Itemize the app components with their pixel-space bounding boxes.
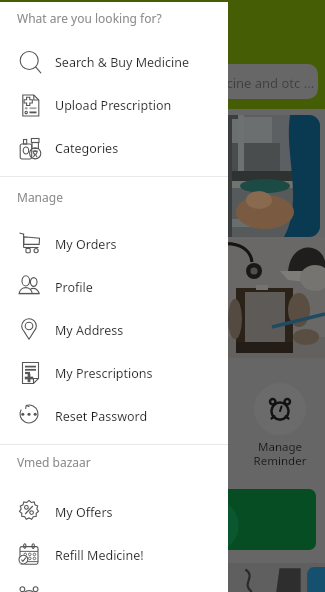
- staticText: Order on WhatsApp: [26, 511, 150, 529]
- button[interactable]: [0, 581, 228, 592]
- staticText: Manage: [17, 189, 63, 205]
- button[interactable]: My Offers: [0, 495, 228, 529]
- staticText: My Offers: [55, 504, 113, 521]
- staticText: Manage Reminder: [240, 439, 320, 468]
- button[interactable]: Upload Prescription: [0, 88, 228, 122]
- staticText: Search for medicine and otc ...: [130, 74, 315, 92]
- staticText: Upload Prescription: [55, 97, 172, 114]
- button[interactable]: Reset Password: [0, 399, 228, 433]
- button[interactable]: Search & Buy Medicine: [0, 45, 228, 79]
- button[interactable]: Refill Medicine!: [0, 538, 228, 572]
- button[interactable]: My Address: [0, 313, 228, 347]
- staticText: Categories: [55, 140, 119, 157]
- button[interactable]: Profile: [0, 270, 228, 304]
- button[interactable]: Categories: [0, 131, 228, 165]
- staticText: Vmed bazaar: [17, 454, 91, 470]
- staticText: What are you looking for?: [17, 10, 162, 26]
- staticText: My Address: [55, 322, 124, 339]
- button[interactable]: Order on WhatsApp: [14, 489, 316, 550]
- button[interactable]: My Orders: [0, 227, 228, 261]
- button[interactable]: My Prescriptions: [0, 356, 228, 390]
- staticText: Reset Password: [55, 408, 148, 425]
- staticText: Search & Buy Medicine: [55, 54, 189, 71]
- button[interactable]: Search for medicine and otc ...: [14, 64, 318, 99]
- staticText: My Prescriptions: [55, 365, 153, 382]
- button[interactable]: [12, 115, 320, 237]
- staticText: Refill Medicine!: [55, 547, 144, 564]
- staticText: Profile: [55, 279, 93, 296]
- button[interactable]: [0, 237, 325, 358]
- button[interactable]: [254, 383, 306, 435]
- staticText: My Orders: [55, 236, 117, 253]
